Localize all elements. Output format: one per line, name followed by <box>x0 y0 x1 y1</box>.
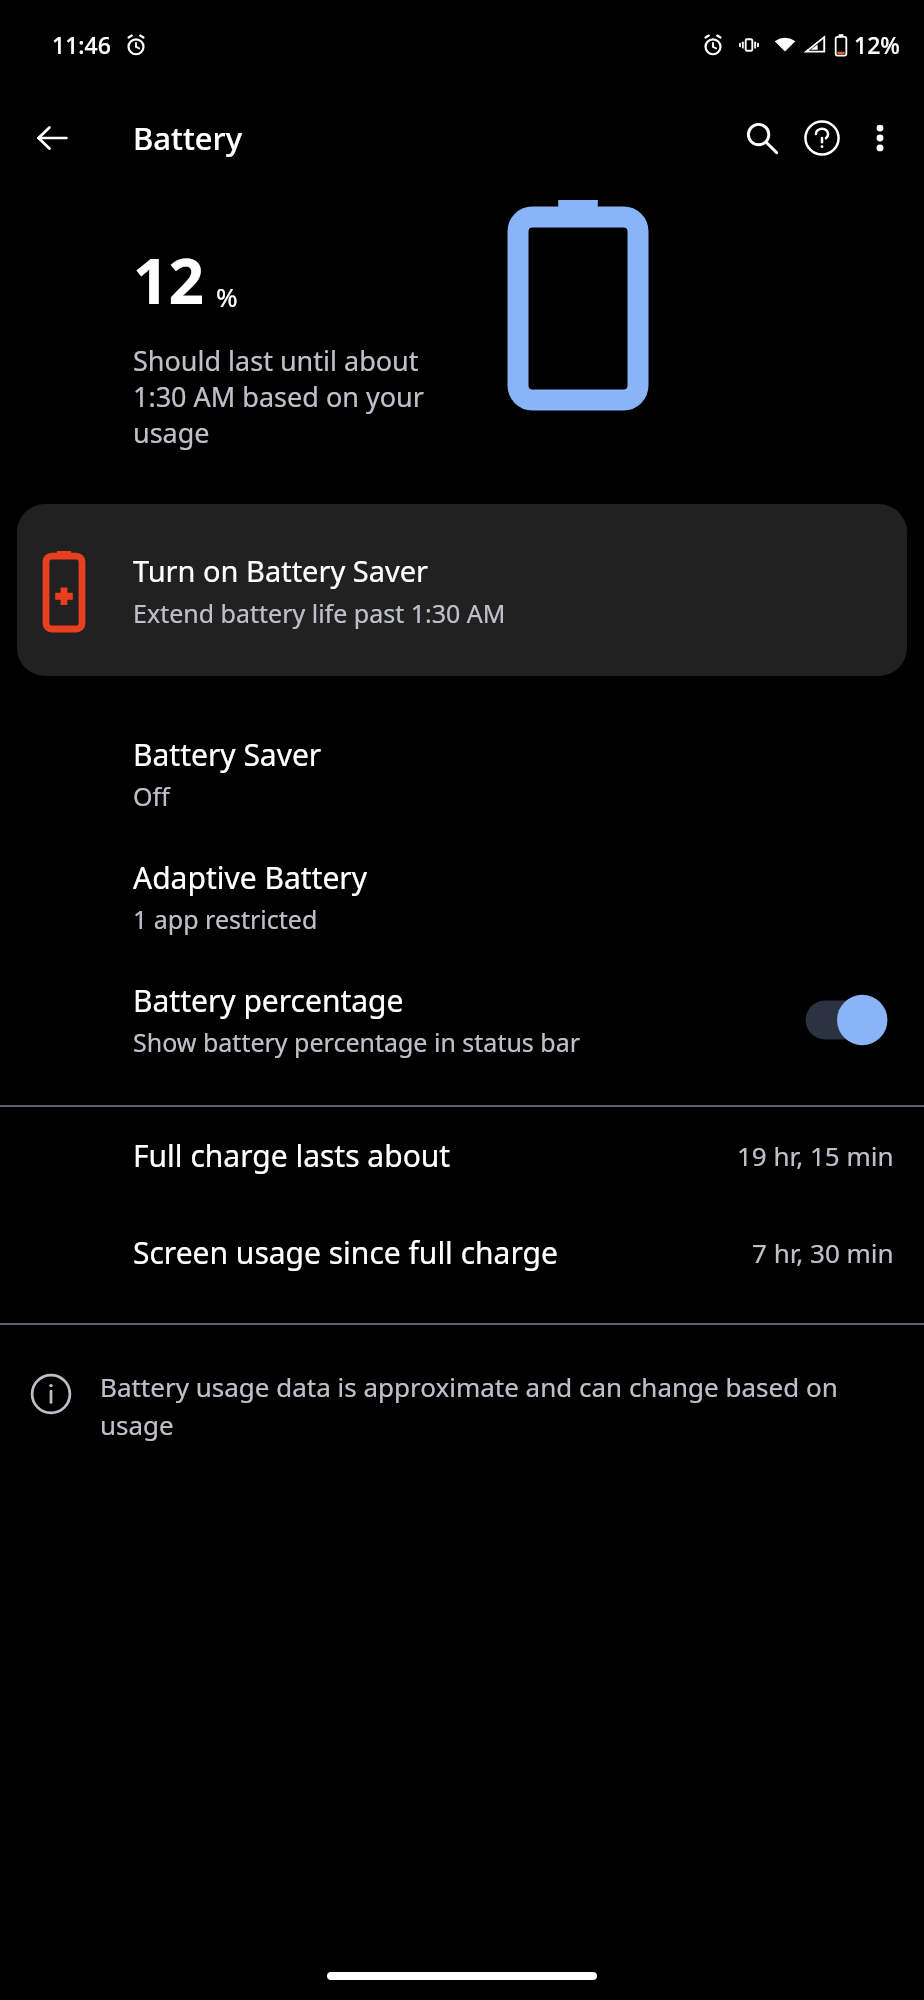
staticText: Off <box>133 779 170 813</box>
staticText: % <box>216 279 238 314</box>
staticText: Battery usage data is approximate and ca… <box>100 1369 898 1442</box>
button[interactable]: More options <box>852 110 908 166</box>
button[interactable]: Full charge lasts about <box>0 1107 924 1204</box>
button[interactable]: Screen usage since full charge <box>0 1204 924 1301</box>
staticText: Should last until about 1:30 AM based on… <box>133 342 463 451</box>
staticText: 11:46 <box>52 29 111 60</box>
staticText: Show battery percentage in status bar <box>133 1025 581 1059</box>
button[interactable]: Search <box>732 108 792 168</box>
staticText: Battery percentage <box>133 980 404 1021</box>
button[interactable]: Battery percentage <box>0 958 924 1081</box>
staticText: Screen usage since full charge <box>133 1232 736 1273</box>
staticText: Battery Saver <box>133 734 322 775</box>
button[interactable]: Back <box>24 110 80 166</box>
button[interactable]: Battery Saver <box>0 712 924 835</box>
staticText: Battery <box>133 117 243 159</box>
staticText: 12% <box>854 29 900 60</box>
staticText: 19 hr, 15 min <box>737 1138 894 1173</box>
staticText: 7 hr, 30 min <box>752 1235 894 1270</box>
button[interactable]: Adaptive Battery <box>0 835 924 958</box>
staticText: Extend battery life past 1:30 AM <box>133 596 506 630</box>
staticText: Full charge lasts about <box>133 1135 721 1176</box>
staticText: 1 app restricted <box>133 902 318 936</box>
button[interactable]: Help <box>792 108 852 168</box>
button[interactable]: Turn on Battery Saver <box>17 504 907 676</box>
staticText: 12 <box>133 238 204 322</box>
staticText: Turn on Battery Saver <box>133 551 429 590</box>
staticText: Adaptive Battery <box>133 857 368 898</box>
button[interactable]: Battery percentage toggle <box>796 992 892 1048</box>
